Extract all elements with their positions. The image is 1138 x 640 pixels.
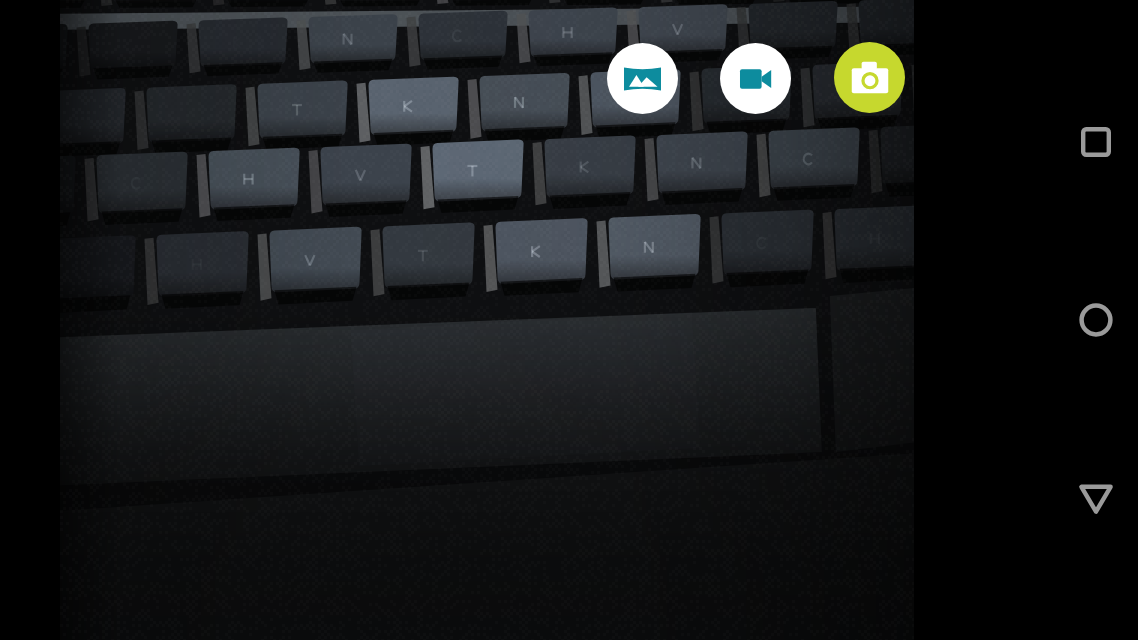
button[interactable]: Take photo bbox=[834, 42, 905, 113]
button[interactable]: Recent apps bbox=[1068, 114, 1124, 170]
button[interactable]: Record video bbox=[720, 43, 791, 114]
button[interactable]: Home bbox=[1068, 292, 1124, 348]
button[interactable]: Back bbox=[1068, 470, 1124, 526]
button[interactable]: Panorama bbox=[607, 43, 678, 114]
